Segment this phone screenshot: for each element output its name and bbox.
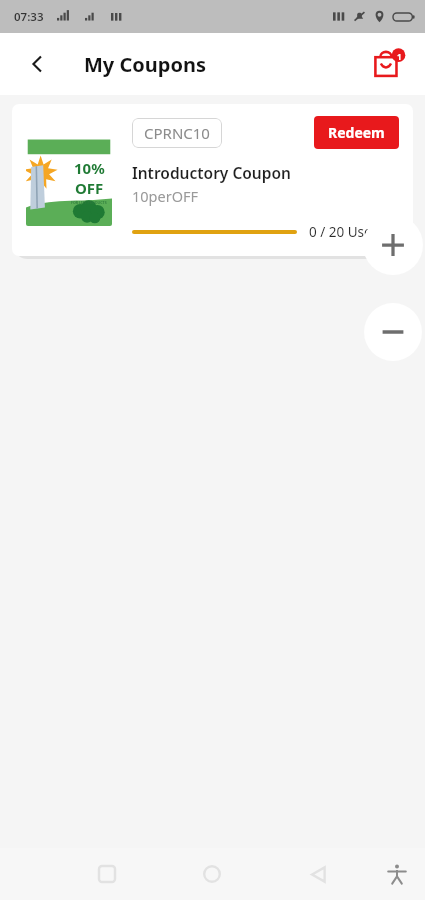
button[interactable]: Accessibility: [378, 855, 416, 893]
button[interactable]: Home: [191, 853, 233, 895]
staticText: CPRNC10: [144, 123, 210, 143]
button[interactable]: Redeem: [328, 123, 385, 142]
staticText: 07:33: [14, 9, 44, 25]
staticText: 10perOFF: [132, 186, 199, 206]
button[interactable]: CPRNC10: [144, 123, 210, 143]
staticText: FOR LIST PRODUCTS: [71, 200, 107, 205]
staticText: 10%: [74, 158, 105, 178]
button[interactable]: Back: [18, 45, 56, 83]
staticText: Introductory Coupon: [132, 162, 291, 183]
button[interactable]: Recent apps: [86, 853, 128, 895]
button[interactable]: 10%: [12, 104, 413, 256]
staticText: My Coupons: [84, 51, 206, 78]
staticText: 0 / 20 Used: [309, 223, 380, 241]
staticText: Redeem: [328, 123, 385, 142]
staticText: 1: [397, 51, 402, 62]
staticText: OFF: [75, 178, 104, 198]
button[interactable]: Zoom in: [363, 215, 423, 275]
button[interactable]: Zoom out: [364, 303, 422, 361]
button[interactable]: Back: [297, 853, 339, 895]
button[interactable]: Cart: [369, 44, 409, 84]
